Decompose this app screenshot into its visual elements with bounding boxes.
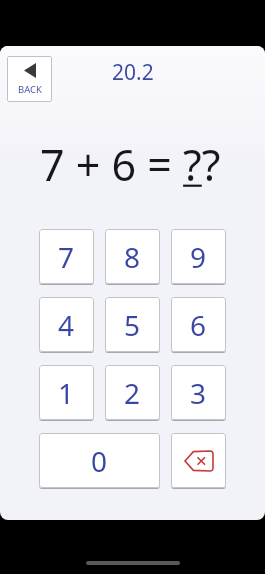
staticText: 8 bbox=[124, 238, 141, 276]
button[interactable]: 1 bbox=[39, 365, 94, 420]
staticText: 7 bbox=[58, 238, 75, 276]
button[interactable]: 3 bbox=[171, 365, 226, 420]
button[interactable]: 6 bbox=[171, 297, 226, 352]
button[interactable]: 8 bbox=[105, 229, 160, 284]
staticText: 3 bbox=[190, 374, 207, 412]
button[interactable]: 0 bbox=[39, 433, 160, 488]
button[interactable]: 9 bbox=[171, 229, 226, 284]
button[interactable]: 2 bbox=[105, 365, 160, 420]
button[interactable]: 4 bbox=[39, 297, 94, 352]
staticText: 2 bbox=[124, 374, 141, 412]
button[interactable]: BACK bbox=[7, 56, 52, 102]
staticText: 7 + 6 = ?? bbox=[40, 135, 221, 194]
staticText: 5 bbox=[124, 306, 141, 344]
staticText: 20.2 bbox=[112, 58, 154, 87]
staticText: 1 bbox=[58, 374, 75, 412]
staticText: 9 bbox=[190, 238, 207, 276]
staticText: 0 bbox=[91, 442, 108, 480]
staticText: 4 bbox=[58, 306, 75, 344]
staticText: 6 bbox=[190, 306, 207, 344]
staticText: BACK bbox=[18, 83, 42, 96]
button[interactable] bbox=[171, 433, 226, 488]
button[interactable]: 7 bbox=[39, 229, 94, 284]
button[interactable]: 5 bbox=[105, 297, 160, 352]
